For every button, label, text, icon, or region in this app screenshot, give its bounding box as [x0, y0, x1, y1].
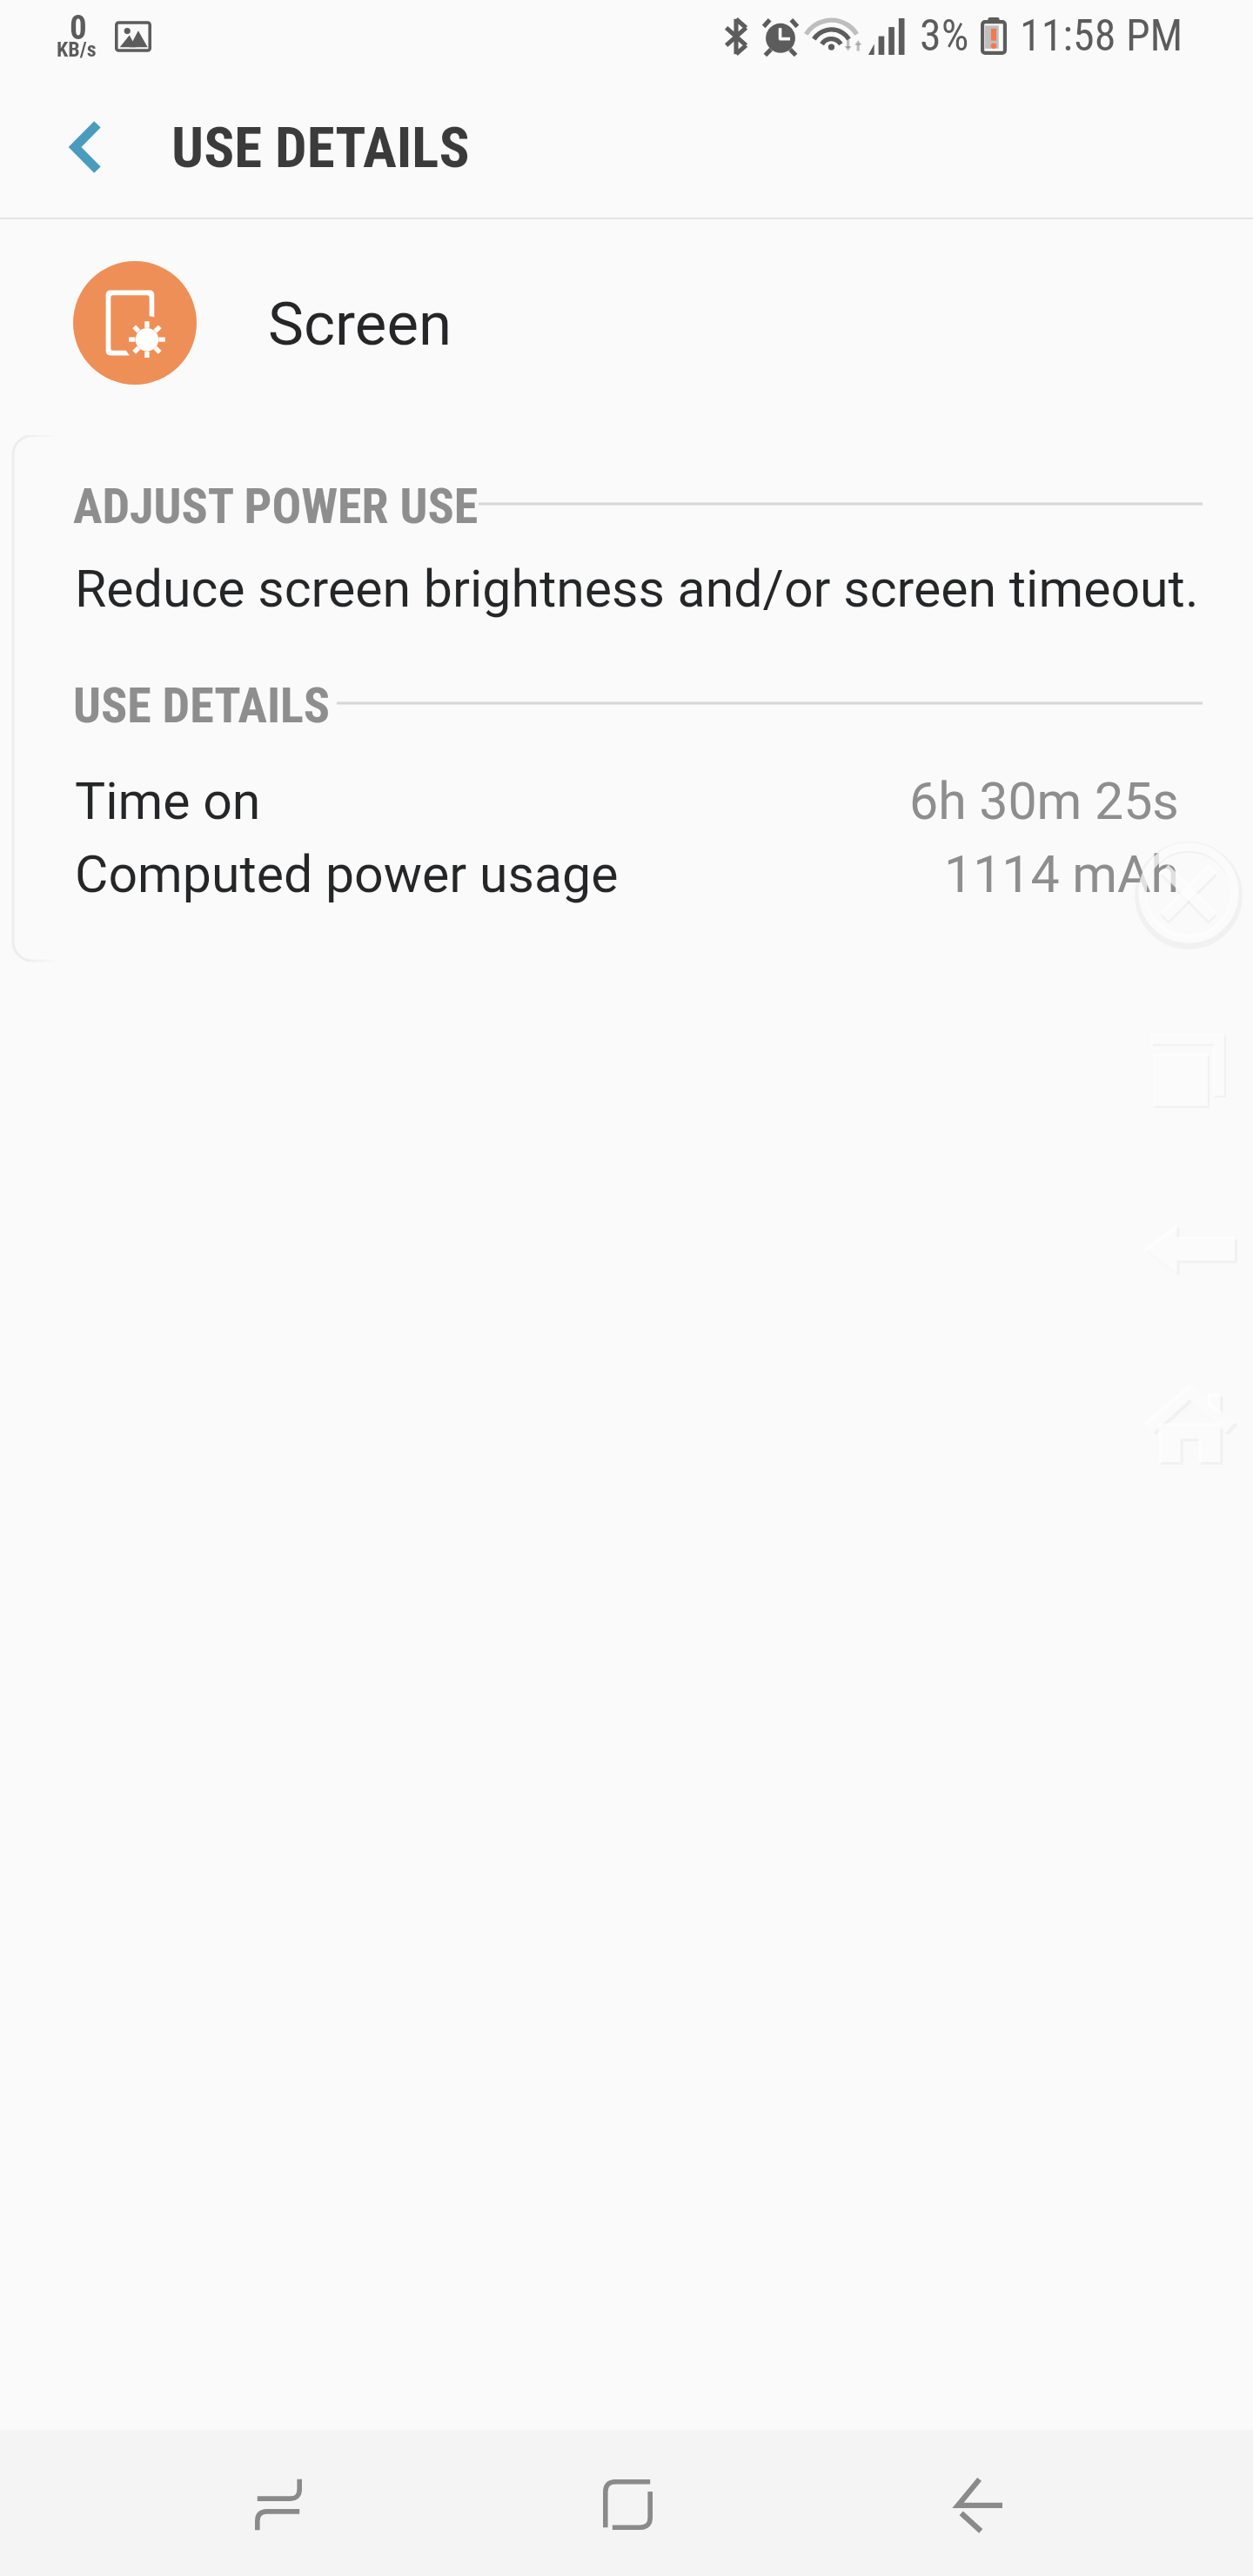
- staticText: 6h 30m 25s: [909, 771, 1179, 831]
- staticText: Computed power usage: [75, 844, 619, 904]
- staticText: ADJUST POWER USE: [73, 478, 479, 535]
- button[interactable]: Recent apps: [183, 2435, 374, 2574]
- button[interactable]: Screen usage icon: [0, 219, 1253, 435]
- button[interactable]: Home: [532, 2435, 723, 2574]
- staticText: KB/s: [57, 37, 97, 62]
- staticText: 1114 mAh: [944, 844, 1179, 904]
- staticText: Reduce screen brightness and/or screen t…: [75, 559, 1199, 619]
- staticText: 3%: [920, 10, 969, 62]
- button[interactable]: Time on: [0, 763, 1253, 838]
- staticText: USE DETAILS: [171, 115, 470, 181]
- staticText: 11:58 PM: [1020, 10, 1183, 62]
- staticText: USE DETAILS: [73, 677, 331, 735]
- staticText: 0: [70, 8, 87, 48]
- button[interactable]: Navigate up: [38, 99, 134, 195]
- staticText: Screen: [268, 289, 452, 359]
- staticText: Time on: [75, 771, 261, 831]
- button[interactable]: Computed power usage: [0, 836, 1253, 911]
- button[interactable]: Back: [882, 2435, 1074, 2574]
- other: Screen usage icon: [73, 261, 197, 385]
